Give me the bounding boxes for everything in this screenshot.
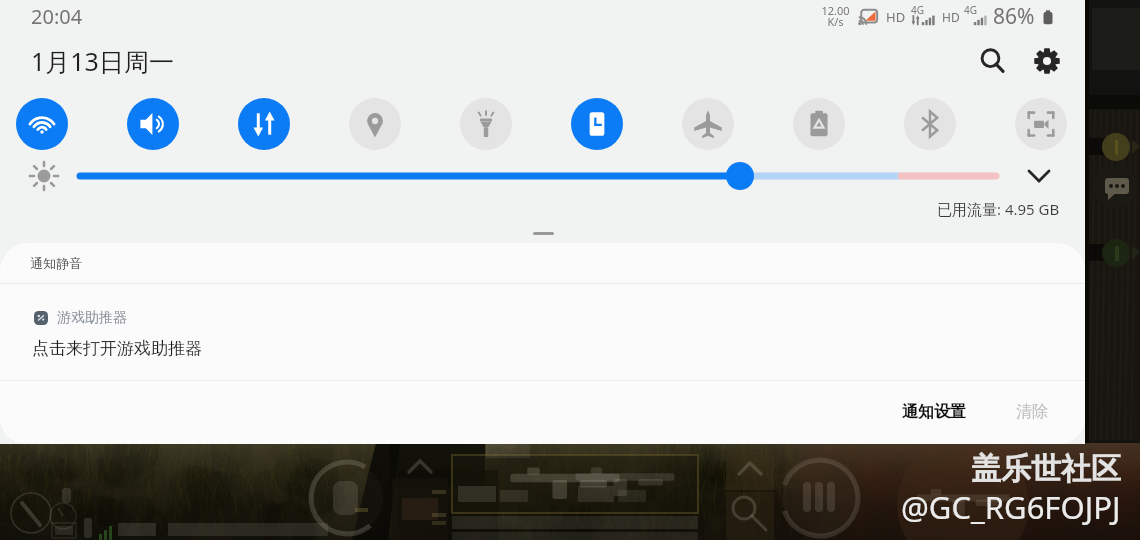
staticText: 游戏助推器 (57, 309, 127, 327)
staticText: 4G (911, 3, 924, 17)
button[interactable]: Flashlight (460, 98, 512, 150)
button[interactable]: Settings (1025, 39, 1069, 83)
button[interactable]: Location (349, 98, 401, 150)
staticText: 4G (964, 3, 977, 17)
staticText: @GC_RG6FOJPJ (901, 486, 1121, 528)
button[interactable]: 游戏助推器 (0, 284, 1085, 380)
button[interactable]: Bluetooth (904, 98, 956, 150)
button[interactable]: Search (971, 39, 1015, 83)
button[interactable]: 清除 (996, 382, 1068, 442)
staticText: 盖乐世社区 (971, 450, 1121, 488)
button[interactable]: Power saving (793, 98, 845, 150)
staticText: 已用流量: 4.95 GB (937, 199, 1060, 219)
button[interactable]: Sound (127, 98, 179, 150)
staticText: 点击来打开游戏助推器 (32, 338, 202, 359)
button[interactable]: Auto rotate (571, 98, 623, 150)
staticText: HD (886, 8, 906, 26)
staticText: 86% (993, 2, 1035, 31)
staticText: HD (942, 9, 960, 25)
staticText: 20:04 (31, 3, 83, 30)
button[interactable]: Mobile data (238, 98, 290, 150)
button[interactable]: Wi-Fi (16, 98, 68, 150)
button[interactable]: Expand (1017, 154, 1061, 198)
staticText: 清除 (1016, 402, 1048, 422)
button[interactable]: 通知设置 (880, 382, 988, 442)
staticText: 1月13日周一 (31, 44, 174, 78)
staticText: 通知设置 (902, 402, 966, 422)
button[interactable]: Screen recorder (1015, 98, 1067, 150)
staticText: 通知静音 (30, 255, 82, 271)
staticText: 12.00 K/s (821, 3, 850, 30)
button[interactable]: Airplane mode (682, 98, 734, 150)
